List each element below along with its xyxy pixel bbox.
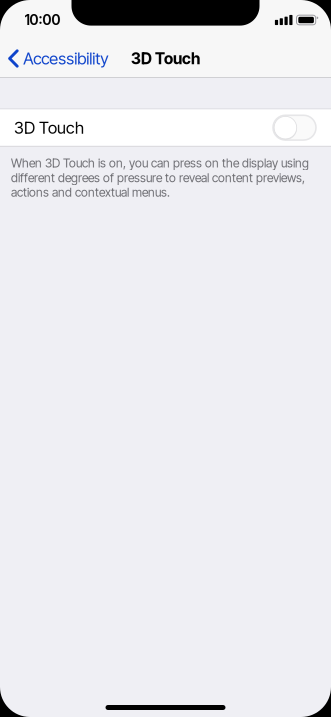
button[interactable]: Accessibility [0,43,118,73]
staticText: 10:00 [24,11,60,28]
staticText: 3D Touch [131,49,200,68]
staticText: 3D Touch [14,118,84,138]
button[interactable]: 3D Touch [0,109,331,146]
staticText: When 3D Touch is on, you can press on th… [11,156,309,200]
staticText: Accessibility [23,49,108,68]
